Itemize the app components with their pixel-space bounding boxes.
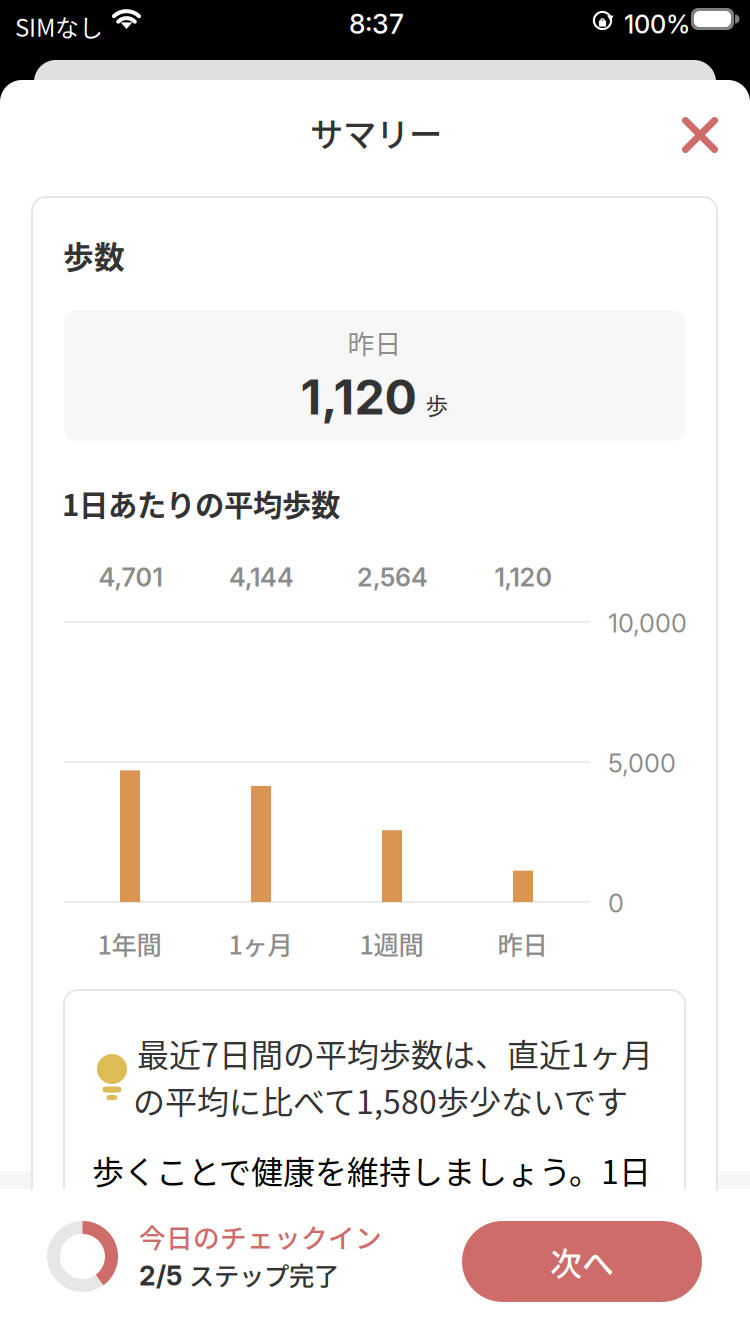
staticText: 次へ — [550, 1238, 614, 1285]
staticText: 1年間 — [97, 925, 161, 962]
button[interactable]: 今日のチェックイン — [30, 1200, 370, 1300]
staticText: 1,120 — [300, 368, 416, 426]
button[interactable]: 閉じる — [661, 96, 739, 174]
staticText: の平均に比べて1,580歩少ないです — [133, 1077, 628, 1123]
staticText: サマリー — [310, 108, 442, 156]
button[interactable]: 次へ — [462, 1221, 702, 1302]
staticText: 今日のチェックイン — [139, 1217, 382, 1256]
staticText: 2,564 — [357, 562, 428, 593]
staticText: 歩数 — [63, 233, 125, 277]
staticText: 100% — [624, 9, 690, 40]
staticText: 1日あたりの平均歩数 — [62, 482, 340, 524]
staticText: 歩 — [425, 388, 448, 421]
staticText: 歩くことで健康を維持しましょう。1日 — [92, 1147, 651, 1193]
staticText: 5,000 — [608, 748, 676, 779]
staticText: ステップ完了 — [189, 1256, 339, 1293]
staticText: 4,144 — [229, 562, 294, 593]
staticText: 0 — [608, 888, 624, 919]
staticText: 1ヶ月 — [228, 925, 292, 962]
staticText: 最近7日間の平均歩数は、直近1ヶ月 — [137, 1030, 653, 1076]
staticText: 1,120 — [494, 562, 552, 593]
staticText: 8:37 — [349, 8, 404, 40]
staticText: SIMなし — [15, 9, 103, 44]
staticText: 1週間 — [359, 925, 423, 962]
staticText: 昨日 — [347, 323, 401, 362]
staticText: 10,000 — [608, 608, 687, 639]
staticText: 昨日 — [497, 925, 547, 962]
staticText: 2/5 — [139, 1260, 182, 1292]
staticText: 4,701 — [98, 562, 162, 593]
